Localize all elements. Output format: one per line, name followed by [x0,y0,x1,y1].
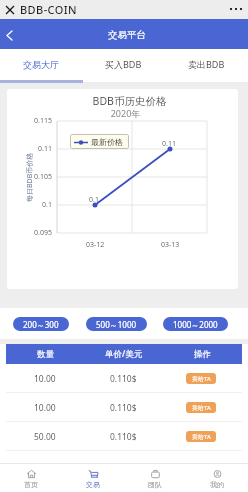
staticText: 0.105 [34,172,52,182]
staticText: 0.095 [34,228,52,238]
staticText: 首页 [24,480,38,489]
staticText: 0.11 [38,144,52,154]
staticText: 0.11 [162,139,176,149]
staticText: 卖给TA [192,375,211,383]
button[interactable]: 买入BDB [82,49,165,83]
staticText: 卖给TA [192,433,211,441]
staticText: 50.00 [34,431,56,443]
button[interactable]: 200～300 [13,317,69,331]
staticText: 交易大厅 [23,59,59,70]
staticText: 200～300 [23,319,59,330]
staticText: 单价/美元 [105,348,143,360]
staticText: 卖出BDB [188,58,225,70]
staticText: 03-13 [161,240,180,250]
staticText: 1000～2000 [173,319,218,330]
staticText: 10.00 [34,402,56,414]
staticText: 0.110$ [110,402,137,414]
button[interactable]: 1000～2000 [163,317,228,331]
button[interactable]: 团队 [124,463,186,492]
button[interactable]: 500～1000 [86,317,147,331]
staticText: 0.110$ [110,373,137,385]
staticText: 0.1 [89,195,99,205]
staticText: 买入BDB [105,58,142,70]
staticText: 0.110$ [110,431,137,443]
button[interactable]: 首页 [0,463,62,492]
button[interactable]: 交易大厅 [0,49,82,83]
button[interactable]: Back [0,19,19,49]
staticText: 每日BDB币价格 [25,152,35,202]
staticText: 03-12 [86,240,105,250]
staticText: 卖给TA [192,404,211,412]
staticText: 团队 [148,480,162,489]
staticText: 最新价格 [91,137,123,147]
button[interactable]: 卖给TA [186,373,216,384]
button[interactable]: More options [224,0,248,19]
staticText: 操作 [194,349,211,360]
staticText: 500～1000 [96,319,137,330]
staticText: 0.1 [42,200,52,210]
staticText: BDB-COIN [20,2,77,17]
staticText: 我的 [210,480,224,489]
staticText: 数量 [37,349,54,360]
button[interactable]: 我的 [186,463,248,492]
staticText: 交易 [86,480,100,489]
button[interactable]: 卖给TA [186,431,216,442]
button[interactable]: 交易 [62,463,124,492]
staticText: BDB币历史价格 [14,94,238,108]
button[interactable]: 卖出BDB [165,49,248,83]
button[interactable]: 卖给TA [186,402,216,413]
staticText: 0.115 [34,116,52,126]
staticText: 交易平台 [108,29,146,41]
staticText: 10.00 [34,373,56,385]
staticText: 2020年 [10,107,238,119]
button[interactable]: Close [0,0,19,19]
